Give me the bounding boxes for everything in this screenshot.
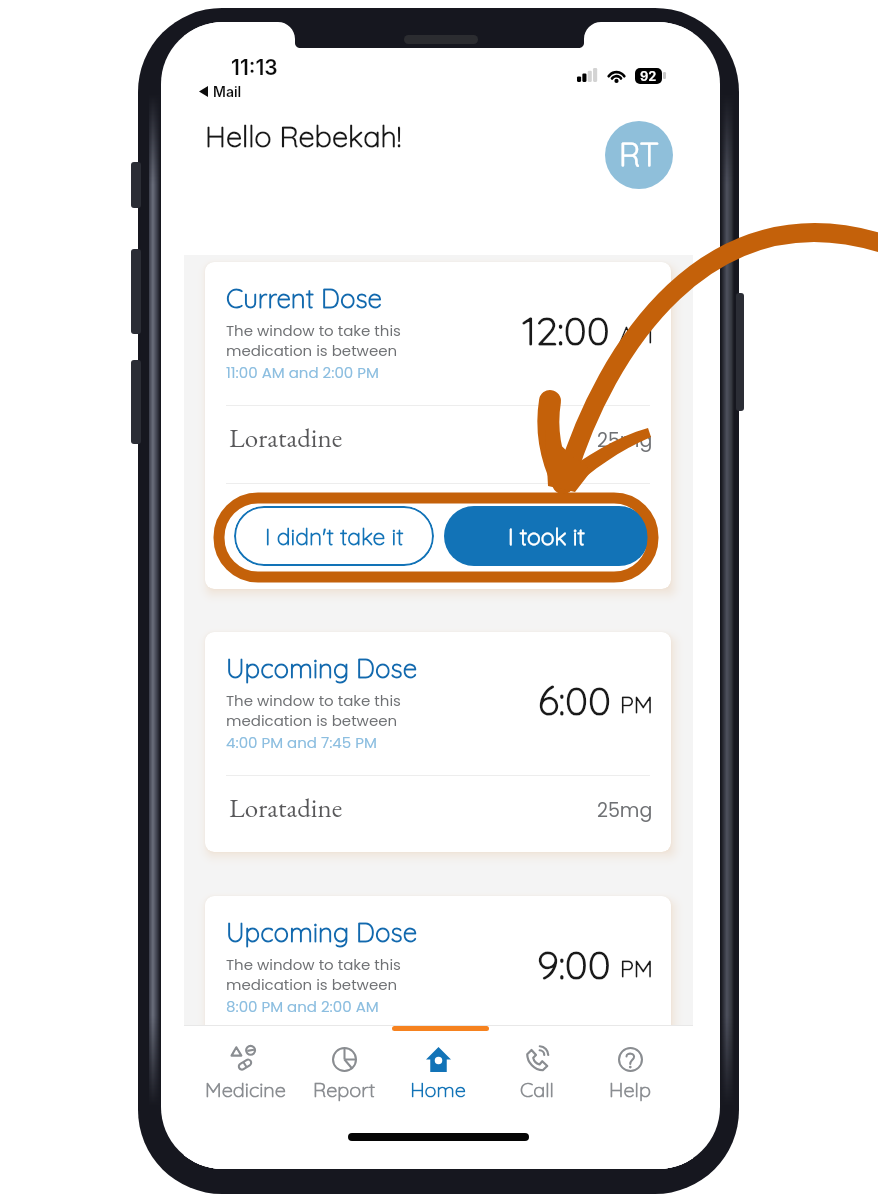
staticText: Help — [609, 1077, 651, 1102]
button[interactable]: Help — [580, 1044, 680, 1102]
staticText: Current Dose — [226, 282, 382, 315]
staticText: Hello Rebekah! — [205, 118, 402, 154]
staticText: Report — [313, 1077, 375, 1102]
staticText: Loratadine — [229, 420, 343, 455]
staticText: The window to take this medication is be… — [226, 320, 401, 362]
staticText: PM — [620, 690, 653, 719]
staticText: Home — [410, 1077, 466, 1102]
button[interactable]: Report — [294, 1044, 394, 1102]
staticText: 25mg — [597, 1061, 653, 1088]
staticText: I didn't take it — [265, 522, 404, 551]
other: Report — [332, 1047, 357, 1072]
button[interactable]: Call — [487, 1044, 587, 1102]
staticText: Upcoming Dose — [226, 916, 418, 949]
button[interactable]: Profile RT — [605, 121, 673, 189]
other: Call — [525, 1047, 550, 1072]
staticText: 11:13 — [231, 55, 278, 80]
button[interactable]: Medicine — [195, 1044, 295, 1102]
staticText: Loratadine — [229, 790, 343, 825]
staticText: Upcoming Dose — [226, 652, 418, 685]
staticText: RT — [619, 134, 659, 174]
staticText: 9:00 — [537, 940, 611, 989]
staticText: 25mg — [597, 797, 653, 824]
other: Home — [426, 1047, 451, 1072]
staticText: 6:00 — [538, 676, 611, 725]
staticText: PM — [620, 954, 653, 983]
button[interactable]: Home — [388, 1044, 488, 1102]
staticText: 25mg — [597, 427, 653, 454]
button[interactable]: I didn't take it — [234, 506, 434, 566]
staticText: 4:00 PM and 7:45 PM — [226, 732, 377, 753]
other: Help — [618, 1047, 643, 1072]
staticText: 12:00 — [522, 306, 610, 355]
other: Medicine — [231, 1045, 259, 1073]
staticText: 11:00 AM and 2:00 PM — [226, 362, 379, 383]
staticText: Call — [520, 1077, 554, 1102]
staticText: 8:00 PM and 2:00 AM — [226, 996, 379, 1017]
button[interactable]: I took it — [444, 506, 649, 566]
staticText: AM — [619, 320, 653, 349]
staticText: I took it — [508, 522, 585, 551]
staticText: Loratadine — [229, 1054, 343, 1089]
staticText: 92 — [640, 68, 657, 84]
staticText: Mail — [213, 83, 242, 100]
staticText: The window to take this medication is be… — [226, 690, 401, 732]
staticText: The window to take this medication is be… — [226, 954, 401, 996]
staticText: Medicine — [205, 1077, 286, 1102]
